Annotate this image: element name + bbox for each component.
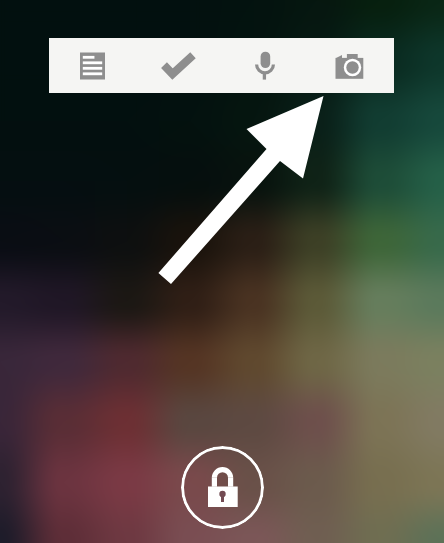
button[interactable]: Unlock [181, 446, 264, 529]
button[interactable]: Done [135, 38, 221, 93]
button[interactable]: Voice search [221, 38, 307, 93]
button[interactable]: Notes [49, 38, 135, 93]
button[interactable]: Camera [307, 38, 394, 93]
